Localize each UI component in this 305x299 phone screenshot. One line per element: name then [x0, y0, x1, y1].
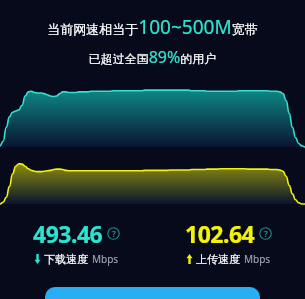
button[interactable] — [45, 287, 260, 299]
button[interactable]: 下载速度说明 — [107, 227, 120, 240]
staticText: ? — [112, 228, 116, 239]
staticText: Mbps — [244, 252, 271, 266]
staticText: 当前网速相当于100~500M宽带 — [0, 14, 305, 40]
button[interactable]: 102.64 — [185, 218, 272, 266]
staticText: 已超过全国89%的用户 — [0, 46, 305, 68]
staticText: 102.64 — [185, 218, 255, 249]
button[interactable]: 上传速度说明 — [259, 227, 272, 240]
button[interactable]: 493.46 — [33, 218, 120, 266]
staticText: 下载速度 — [44, 252, 88, 266]
staticText: ? — [264, 228, 268, 239]
staticText: Mbps — [92, 252, 119, 266]
staticText: 上传速度 — [196, 252, 240, 266]
staticText: 493.46 — [33, 218, 103, 249]
